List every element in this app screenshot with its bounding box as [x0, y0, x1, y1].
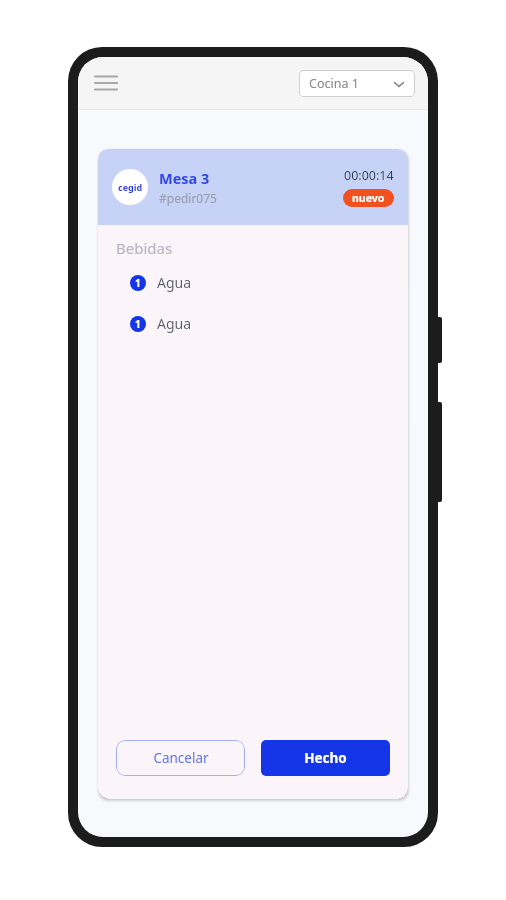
staticText: 1 [135, 317, 141, 331]
staticText: Cancelar [153, 749, 209, 767]
button[interactable]: Hecho [261, 740, 390, 776]
staticText: #pedir075 [159, 190, 217, 206]
staticText: Agua [157, 314, 192, 333]
staticText: Agua [157, 273, 192, 292]
staticText: Hecho [304, 749, 347, 767]
staticText: Bebidas [116, 238, 173, 258]
staticText: nuevo [352, 191, 385, 205]
button[interactable]: 1 [116, 312, 390, 335]
button[interactable]: cegid [98, 149, 408, 225]
button[interactable]: Cocina 1 [299, 70, 415, 97]
staticText: 00:00:14 [344, 167, 394, 184]
button[interactable]: Cancelar [116, 740, 245, 776]
button[interactable]: Menu [86, 63, 126, 103]
staticText: Mesa 3 [159, 168, 210, 188]
button[interactable]: 1 [116, 271, 390, 294]
staticText: cegid [118, 181, 143, 193]
staticText: 1 [135, 276, 141, 290]
staticText: Cocina 1 [309, 75, 359, 92]
